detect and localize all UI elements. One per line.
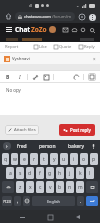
staticText: s [19,170,22,177]
button[interactable]: More options [88,13,96,21]
button[interactable]: Emoji [14,196,21,206]
button[interactable]: x [26,181,34,193]
staticText: m [78,184,83,191]
staticText: o [82,156,86,163]
staticText: /forum/m [52,14,72,20]
button[interactable]: Home [44,211,56,223]
button[interactable]: Like [33,43,48,51]
button[interactable]: No ору [6,87,100,115]
button[interactable]: . [77,196,84,206]
button[interactable]: Notifications [70,26,78,34]
button[interactable]: Backspace [86,181,98,193]
staticText: ⌄ [76,3,80,8]
button[interactable]: Recents [16,211,28,223]
button[interactable]: B [4,73,12,81]
button[interactable]: q [2,153,9,165]
staticText: a [9,170,12,177]
staticText: v [49,184,52,191]
button[interactable]: t [40,153,48,165]
staticText: . [80,198,82,204]
staticText: ıll [29,3,33,8]
button[interactable]: z [16,181,24,193]
button[interactable]: Undo [72,73,80,81]
staticText: w [13,156,17,163]
button[interactable]: Link [31,73,39,81]
staticText: l [89,170,91,177]
button[interactable]: v [46,181,54,193]
button[interactable]: Back [72,211,84,223]
button[interactable]: Insert image [42,73,50,81]
button[interactable]: y [50,153,58,165]
button[interactable]: Search [88,26,96,34]
button[interactable]: Messages [61,26,69,34]
staticText: I [19,74,21,81]
button[interactable]: u [60,153,68,165]
button[interactable]: Profile [49,26,56,33]
staticText: f [39,170,41,177]
button[interactable]: chatzozo.com [18,12,72,21]
staticText: Reply [84,44,95,50]
button[interactable]: ?123 [2,196,12,206]
staticText: i [73,156,75,163]
staticText: j [69,170,71,177]
button[interactable]: Voice input [90,143,97,150]
button[interactable]: d [26,167,34,179]
button[interactable]: c [36,181,44,193]
staticText: e [23,156,26,163]
button[interactable]: h [56,167,64,179]
staticText: Like [39,44,47,50]
button[interactable]: Home [4,12,13,21]
button[interactable]: Quote [53,43,73,51]
staticText: h [58,170,62,177]
button[interactable]: Enter [86,196,98,206]
staticText: English [47,199,60,204]
staticText: g [48,170,52,177]
button[interactable]: m [76,181,84,193]
button[interactable]: × [93,56,96,62]
button[interactable]: Attach files [8,127,36,133]
button[interactable]: Reload [78,13,86,21]
button[interactable]: Menu [4,25,13,34]
button[interactable]: n [66,181,74,193]
button[interactable]: o [80,153,88,165]
staticText: Chat [15,25,31,34]
button[interactable]: I [16,73,24,81]
staticText: z [19,184,22,191]
button[interactable]: i [70,153,78,165]
button[interactable]: English [32,196,75,206]
staticText: x [29,184,32,191]
button[interactable]: s [16,167,24,179]
button[interactable]: p [90,153,98,165]
button[interactable]: a [6,167,14,179]
button[interactable]: Chat [15,25,47,34]
staticText: › [6,143,8,150]
button[interactable]: g [46,167,54,179]
button[interactable]: Report [4,43,20,51]
button[interactable]: w [11,153,18,165]
button[interactable]: b [56,181,64,193]
button[interactable]: r [30,153,38,165]
button[interactable]: More suggestions [3,142,11,150]
staticText: chatzozo.com [24,14,52,20]
staticText: k [79,170,82,177]
button[interactable]: Preview [88,73,96,81]
staticText: p [92,156,96,163]
staticText: No ору [6,87,21,93]
button[interactable]: Change language [23,196,30,206]
button[interactable]: f [36,167,44,179]
button[interactable]: Reply [78,43,96,51]
staticText: ?123 [3,199,11,204]
button[interactable]: j [66,167,74,179]
staticText: person [39,143,56,150]
button[interactable]: Shift [2,181,14,193]
button[interactable]: e [20,153,28,165]
button[interactable]: Post reply [63,127,91,133]
button[interactable]: l [86,167,94,179]
staticText: n [68,184,72,191]
staticText: y [53,156,56,163]
staticText: bakery [68,143,84,150]
staticText: d [28,170,32,177]
button[interactable]: k [76,167,84,179]
staticText: , [17,198,19,204]
button[interactable]: Location [79,26,87,34]
